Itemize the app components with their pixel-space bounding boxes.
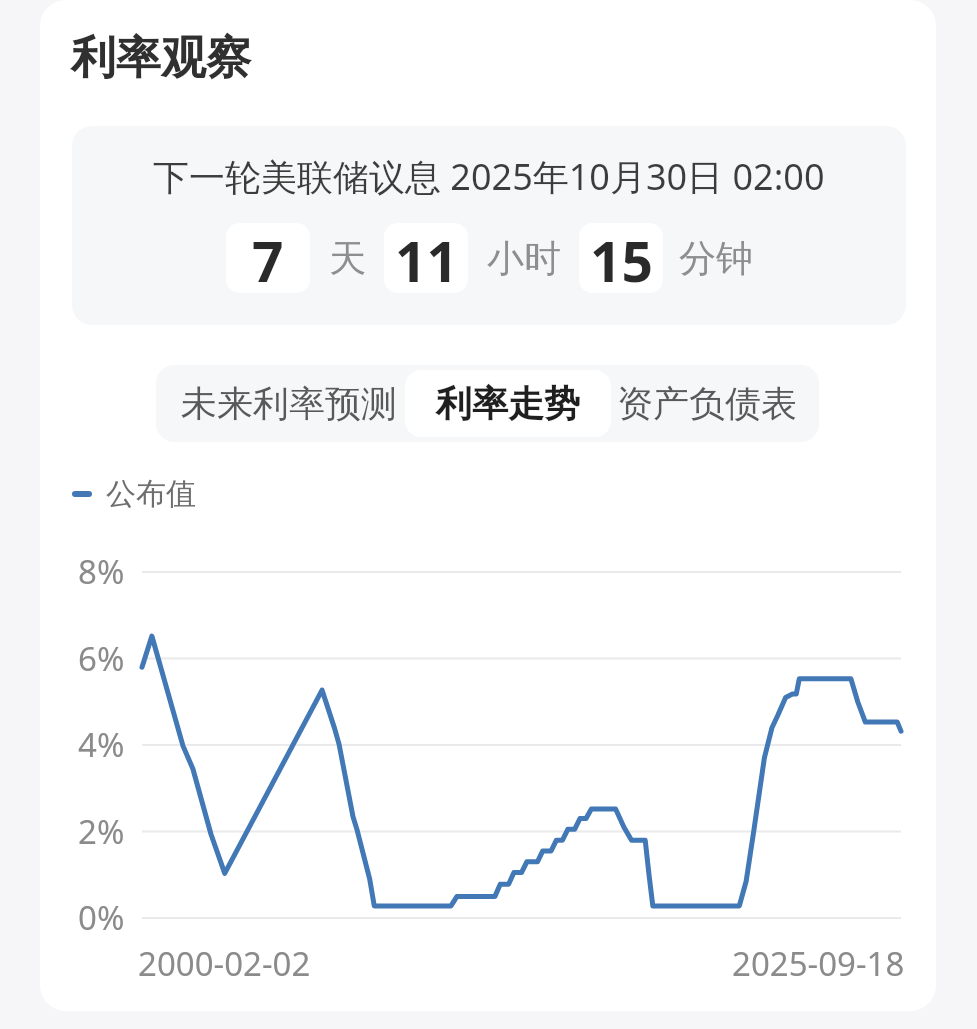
- staticText: 小时: [487, 235, 561, 282]
- staticText: 资产负债表: [617, 381, 797, 426]
- button[interactable]: 未来利率预测: [156, 370, 405, 437]
- staticText: 7: [252, 223, 284, 293]
- staticText: 8%: [78, 549, 125, 594]
- staticText: 利率观察: [71, 30, 251, 87]
- staticText: 未来利率预测: [181, 381, 397, 426]
- staticText: 4%: [78, 722, 125, 767]
- staticText: 0%: [78, 895, 125, 940]
- button[interactable]: 公布值: [72, 475, 196, 513]
- button[interactable]: 利率走势: [405, 370, 611, 437]
- staticText: 2%: [78, 809, 125, 854]
- staticText: 分钟: [679, 235, 753, 282]
- button[interactable]: 下一轮美联储议息 2025年10月30日 02:00: [72, 126, 906, 325]
- staticText: 2025-09-18: [732, 941, 905, 986]
- staticText: 下一轮美联储议息 2025年10月30日 02:00: [153, 152, 825, 201]
- staticText: 天: [329, 235, 366, 282]
- other: 利率走势折线图: [0, 0, 977, 1029]
- staticText: 2000-02-02: [138, 941, 311, 986]
- staticText: 6%: [78, 636, 125, 681]
- staticText: 公布值: [106, 475, 196, 513]
- staticText: 15: [590, 223, 653, 293]
- button[interactable]: 资产负债表: [611, 370, 819, 437]
- staticText: 利率走势: [436, 381, 580, 426]
- staticText: 11: [395, 223, 458, 293]
